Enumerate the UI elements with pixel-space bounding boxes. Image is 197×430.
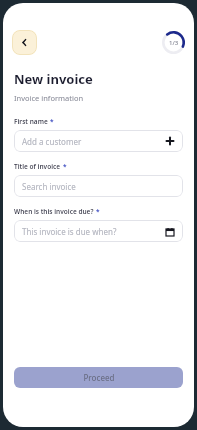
staticText: Add a customer	[22, 136, 165, 147]
staticText: This invoice is due when?	[22, 226, 164, 237]
staticText: Invoice information	[14, 93, 84, 103]
staticText: First name	[14, 117, 48, 126]
button[interactable]: Proceed	[14, 367, 183, 388]
staticText: *	[50, 117, 54, 126]
staticText: 1/3	[169, 39, 179, 47]
staticText: New invoice	[14, 70, 93, 88]
staticText: Search invoice	[22, 181, 175, 192]
staticText: *	[63, 162, 67, 171]
button[interactable]: Back	[12, 30, 37, 55]
staticText: Proceed	[83, 372, 115, 383]
button[interactable]: Add customer	[165, 136, 175, 146]
staticText: Title of invoice	[14, 162, 61, 171]
button[interactable]: Add a customer	[14, 130, 183, 152]
button[interactable]: Pick a date	[164, 226, 175, 237]
button[interactable]: Step 1 of 3	[162, 31, 185, 54]
button[interactable]: This invoice is due when?	[14, 220, 183, 242]
staticText: When is this invoice due?	[14, 207, 94, 216]
staticText: *	[96, 207, 100, 216]
button[interactable]: Search invoice	[14, 175, 183, 197]
